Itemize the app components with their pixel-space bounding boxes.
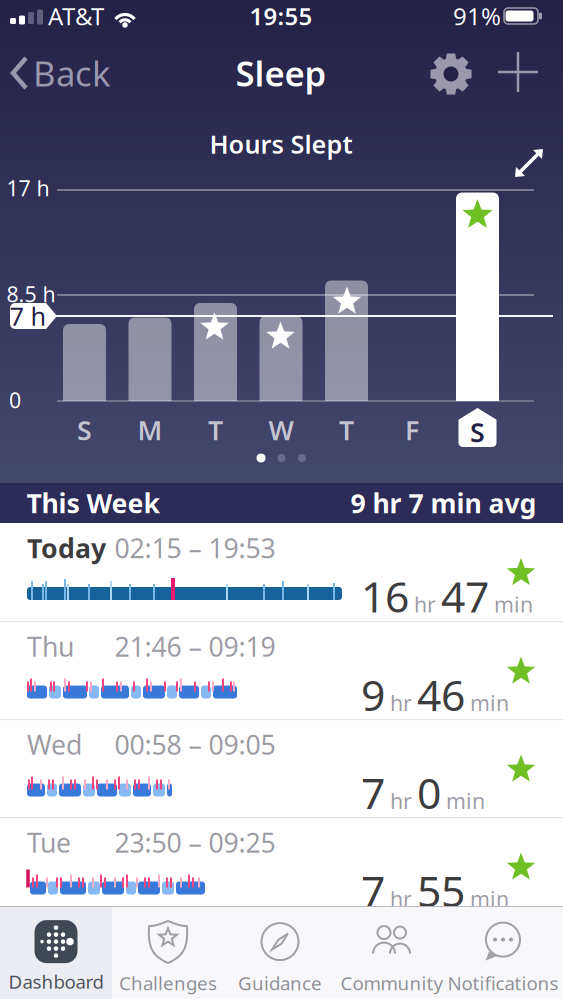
staticText: 47	[441, 568, 489, 624]
staticText: Guidance	[238, 971, 322, 995]
staticText: min	[494, 590, 533, 618]
staticText: hr	[390, 885, 412, 913]
staticText: Notifications	[447, 971, 558, 995]
staticText: This Week	[26, 485, 160, 521]
staticText: 9	[361, 666, 385, 723]
staticText: 91%	[453, 0, 501, 32]
staticText: Dashboard	[8, 969, 103, 994]
staticText: min	[446, 787, 485, 815]
staticText: Challenges	[119, 971, 217, 995]
button[interactable]: Tue	[0, 817, 563, 914]
staticText: 19:55	[249, 0, 312, 32]
staticText: T	[339, 412, 354, 448]
button[interactable]: Thu	[0, 621, 563, 718]
staticText: W	[268, 412, 293, 448]
button[interactable]: Notifications	[447, 919, 558, 995]
button[interactable]: Guidance	[238, 919, 322, 995]
button[interactable]: Back	[8, 51, 118, 95]
button[interactable]: Dashboard	[8, 920, 103, 994]
staticText: Sleep	[235, 50, 326, 96]
staticText: 00:58 – 09:05	[114, 727, 275, 762]
button[interactable]: Add sleep log	[498, 52, 538, 92]
staticText: 0	[417, 764, 441, 821]
staticText: T	[208, 412, 223, 448]
staticText: 7 h	[9, 299, 46, 333]
staticText: 7	[361, 862, 385, 919]
button[interactable]: Today	[0, 523, 563, 620]
staticText: 9 hr 7 min avg	[350, 485, 536, 521]
button[interactable]: Challenges	[119, 919, 217, 995]
button[interactable]: Community	[340, 919, 443, 995]
staticText: 02:15 – 19:53	[114, 530, 275, 566]
staticText: AT&T	[48, 0, 104, 32]
staticText: 7	[361, 764, 385, 821]
staticText: 8.5 h	[6, 280, 55, 308]
staticText: Hours Slept	[209, 127, 352, 161]
button[interactable]: Expand chart	[515, 149, 543, 177]
staticText: Back	[33, 50, 111, 96]
staticText: min	[470, 885, 509, 913]
staticText: M	[137, 412, 162, 448]
button[interactable]: Settings	[430, 53, 472, 95]
staticText: 23:50 – 09:25	[114, 825, 275, 860]
staticText: Today	[27, 530, 106, 566]
staticText: min	[470, 689, 509, 717]
staticText: Wed	[27, 727, 82, 762]
staticText: 0	[9, 386, 21, 414]
staticText: hr	[414, 590, 436, 618]
staticText: hr	[390, 787, 412, 815]
staticText: 55	[417, 862, 465, 919]
staticText: 17 h	[6, 174, 49, 202]
staticText: 21:46 – 09:19	[114, 629, 275, 664]
staticText: hr	[390, 689, 412, 717]
staticText: 16	[361, 568, 409, 624]
button[interactable]: Wed	[0, 719, 563, 816]
staticText: S	[470, 414, 485, 450]
staticText: S	[77, 412, 92, 448]
staticText: 46	[417, 666, 465, 723]
staticText: F	[405, 412, 419, 448]
staticText: Community	[340, 971, 443, 995]
staticText: Tue	[27, 825, 71, 860]
staticText: Thu	[27, 629, 74, 664]
